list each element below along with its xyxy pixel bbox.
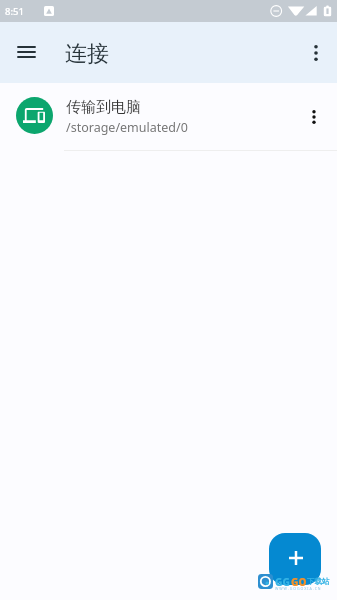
- staticText: 传输到电脑: [66, 98, 141, 117]
- staticText: GO: [291, 575, 307, 589]
- staticText: GG: [275, 575, 290, 589]
- button[interactable]: 传输到电脑: [0, 83, 337, 151]
- staticText: W W W . G O G O X I A . C N: [275, 586, 321, 591]
- staticText: /storage/emulated/0: [66, 119, 188, 136]
- button[interactable]: Item options: [297, 100, 331, 134]
- staticText: 下载站: [307, 577, 330, 586]
- staticText: 8:51: [5, 5, 24, 18]
- staticText: 连接: [65, 40, 109, 68]
- button[interactable]: More options: [299, 36, 333, 70]
- button[interactable]: Add: [269, 533, 321, 585]
- button[interactable]: Menu: [10, 37, 42, 69]
